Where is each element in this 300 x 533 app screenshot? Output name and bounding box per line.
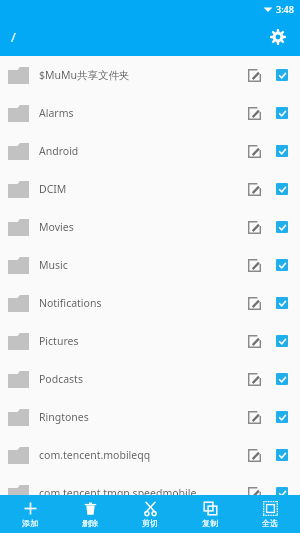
button[interactable]: Rename	[241, 214, 267, 240]
button[interactable]: 添加	[0, 495, 60, 533]
button[interactable]: Selected	[269, 100, 295, 126]
button[interactable]: Settings	[264, 23, 292, 51]
button[interactable]: com.tencent.tmgp.speedmobile	[0, 474, 300, 512]
button[interactable]: Rename	[241, 252, 267, 278]
button[interactable]: Android	[0, 132, 300, 170]
button[interactable]: 剪切	[120, 495, 180, 533]
button[interactable]: Ringtones	[0, 398, 300, 436]
button[interactable]: Rename	[241, 138, 267, 164]
button[interactable]: 全选	[240, 495, 300, 533]
button[interactable]: Podcasts	[0, 360, 300, 398]
button[interactable]: DCIM	[0, 170, 300, 208]
staticText: 添加	[22, 518, 38, 528]
staticText: Pictures	[39, 334, 241, 348]
staticText: 删除	[82, 518, 98, 528]
button[interactable]: Selected	[269, 176, 295, 202]
button[interactable]: Rename	[241, 100, 267, 126]
button[interactable]: 删除	[60, 495, 120, 533]
staticText: $MuMu共享文件夹	[39, 68, 241, 82]
button[interactable]: Selected	[269, 404, 295, 430]
button[interactable]: Selected	[269, 290, 295, 316]
staticText: 复制	[202, 518, 218, 528]
button[interactable]: Selected	[269, 62, 295, 88]
button[interactable]: Selected	[269, 252, 295, 278]
button[interactable]: Selected	[269, 214, 295, 240]
button[interactable]: Rename	[241, 328, 267, 354]
button[interactable]: Music	[0, 246, 300, 284]
button[interactable]: Rename	[241, 366, 267, 392]
button[interactable]: $MuMu共享文件夹	[0, 56, 300, 94]
button[interactable]: Selected	[269, 328, 295, 354]
button[interactable]: Selected	[269, 366, 295, 392]
button[interactable]: Rename	[241, 62, 267, 88]
staticText: Music	[39, 258, 241, 272]
staticText: DCIM	[39, 182, 241, 196]
staticText: 全选	[262, 518, 278, 528]
button[interactable]: Rename	[241, 480, 267, 506]
button[interactable]: Rename	[241, 404, 267, 430]
button[interactable]: Rename	[241, 442, 267, 468]
staticText: Alarms	[39, 106, 241, 120]
button[interactable]: Rename	[241, 176, 267, 202]
button[interactable]: Pictures	[0, 322, 300, 360]
button[interactable]: com.tencent.mobileqq	[0, 436, 300, 474]
button[interactable]: Notifications	[0, 284, 300, 322]
staticText: /	[11, 28, 16, 46]
staticText: 3:48	[276, 3, 294, 15]
button[interactable]: Rename	[241, 290, 267, 316]
staticText: com.tencent.mobileqq	[39, 448, 241, 462]
staticText: com.tencent.tmgp.speedmobile	[39, 486, 241, 500]
staticText: Android	[39, 144, 241, 158]
button[interactable]: Alarms	[0, 94, 300, 132]
button[interactable]: Selected	[269, 442, 295, 468]
button[interactable]: Selected	[269, 480, 295, 506]
button[interactable]: Movies	[0, 208, 300, 246]
staticText: Movies	[39, 220, 241, 234]
button[interactable]: Selected	[269, 138, 295, 164]
staticText: 剪切	[142, 518, 158, 528]
staticText: Ringtones	[39, 410, 241, 424]
staticText: Podcasts	[39, 372, 241, 386]
staticText: Notifications	[39, 296, 241, 310]
button[interactable]: 复制	[180, 495, 240, 533]
